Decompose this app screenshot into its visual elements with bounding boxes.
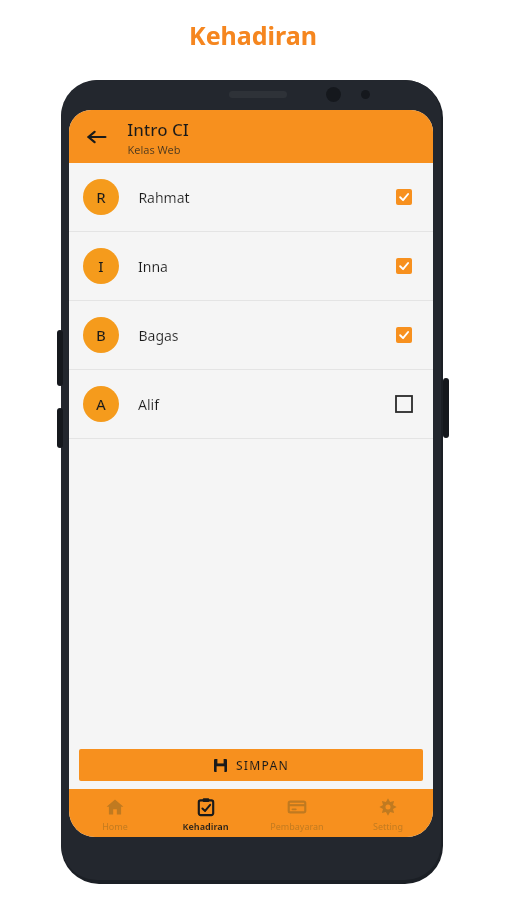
staticText: Kelas Web xyxy=(127,142,181,157)
staticText: Pembayaran xyxy=(270,820,324,832)
button[interactable]: A xyxy=(69,370,433,438)
button[interactable]: I xyxy=(69,232,433,300)
button[interactable]: Unchecked Alif xyxy=(389,389,419,419)
staticText: Setting xyxy=(373,820,403,832)
staticText: A xyxy=(96,394,106,414)
button[interactable]: Checked Bagas xyxy=(389,320,419,350)
button[interactable]: R xyxy=(69,163,433,231)
staticText: Bagas xyxy=(138,326,179,345)
button[interactable]: Kehadiran xyxy=(160,794,251,832)
staticText: R xyxy=(96,187,106,207)
staticText: Intro CI xyxy=(127,118,189,141)
staticText: B xyxy=(96,325,106,345)
button[interactable]: Setting xyxy=(342,794,433,832)
button[interactable]: B xyxy=(69,301,433,369)
staticText: Alif xyxy=(138,395,159,414)
staticText: SIMPAN xyxy=(236,757,289,773)
button[interactable]: Pembayaran xyxy=(251,794,342,832)
button[interactable]: SIMPAN xyxy=(79,749,423,781)
button[interactable]: Back xyxy=(75,115,119,159)
staticText: I xyxy=(98,256,104,276)
button[interactable]: Home xyxy=(69,794,160,832)
staticText: Inna xyxy=(138,257,168,276)
staticText: Rahmat xyxy=(138,188,190,207)
button[interactable]: Checked Inna xyxy=(389,251,419,281)
staticText: Kehadiran xyxy=(182,820,229,832)
staticText: Kehadiran xyxy=(189,18,317,52)
staticText: Home xyxy=(102,820,128,832)
button[interactable]: Checked Rahmat xyxy=(389,182,419,212)
